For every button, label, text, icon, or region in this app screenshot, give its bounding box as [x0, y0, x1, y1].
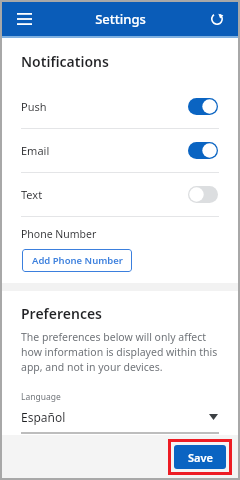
- staticText: Notifications: [21, 52, 109, 71]
- button[interactable]: Menu: [10, 5, 38, 33]
- button[interactable]: Text: [2, 173, 238, 216]
- staticText: Save: [188, 450, 213, 465]
- staticText: Settings: [95, 10, 146, 28]
- button[interactable]: Add Phone Number: [22, 249, 132, 272]
- staticText: Español: [21, 409, 66, 425]
- staticText: The preferences below will only affect h…: [21, 330, 220, 374]
- staticText: Add Phone Number: [32, 254, 123, 267]
- button[interactable]: Refresh: [204, 6, 230, 32]
- staticText: Push: [21, 99, 47, 114]
- button[interactable]: Save: [174, 445, 226, 469]
- staticText: Text: [21, 187, 43, 202]
- button[interactable]: Email: [2, 129, 238, 172]
- button[interactable]: Español: [2, 409, 238, 425]
- staticText: Phone Number: [21, 227, 97, 241]
- staticText: Email: [21, 143, 50, 158]
- button[interactable]: Push: [2, 85, 238, 128]
- staticText: Language: [21, 391, 61, 403]
- staticText: Preferences: [21, 304, 103, 323]
